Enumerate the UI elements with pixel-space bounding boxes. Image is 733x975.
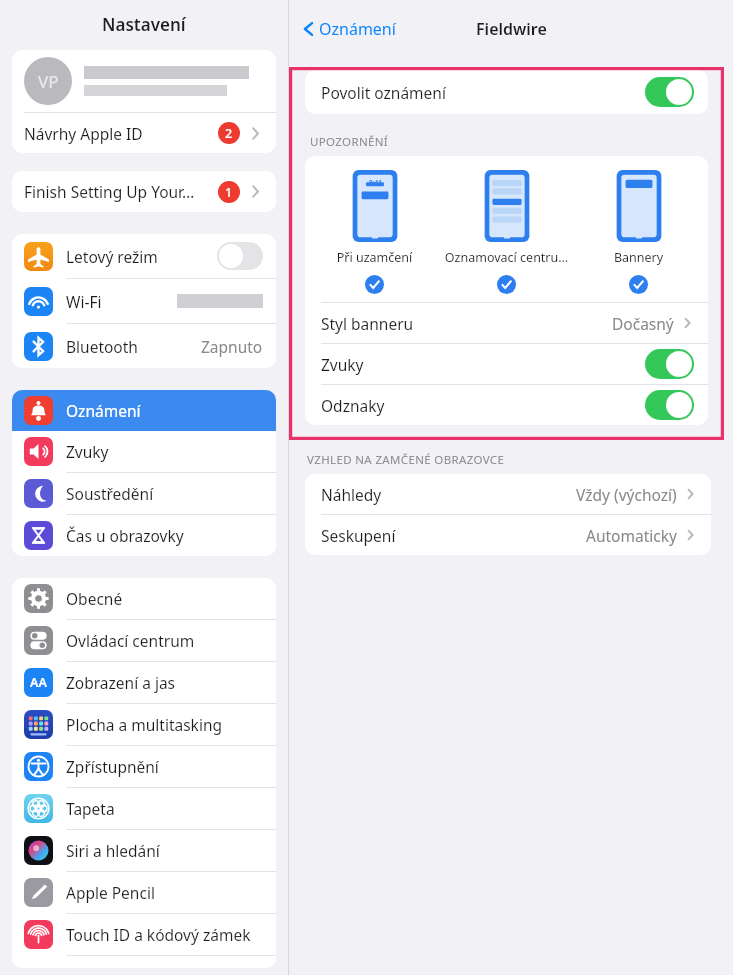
button[interactable]: Návrhy Apple ID xyxy=(12,113,276,153)
staticText: Oznámení xyxy=(319,18,396,40)
staticText: Oznámení xyxy=(66,400,263,421)
staticText: AA xyxy=(30,674,47,691)
button[interactable]: Obecné xyxy=(12,578,276,619)
staticText: Vždy (výchozí) xyxy=(576,484,677,505)
staticText: UPOZORNĚNÍ xyxy=(310,134,389,150)
button[interactable]: Finish Setting Up Your… xyxy=(12,171,276,212)
staticText: Obecné xyxy=(66,588,263,609)
button[interactable]: Čas u obrazovky xyxy=(12,515,276,556)
staticText: Styl banneru xyxy=(321,313,612,334)
button[interactable]: Apple Pencil xyxy=(12,872,276,913)
staticText: Oznamovací centrum xyxy=(444,249,569,266)
staticText: Plocha a multitasking xyxy=(66,714,263,735)
staticText: Tapeta xyxy=(66,798,263,819)
button[interactable]: Zapnuto xyxy=(645,77,694,107)
staticText: Návrhy Apple ID xyxy=(24,123,218,144)
staticText: Automaticky xyxy=(586,525,677,546)
staticText: Letový režim xyxy=(66,246,217,267)
staticText: Finish Setting Up Your… xyxy=(24,181,218,202)
button[interactable]: Oznámení xyxy=(299,15,400,43)
button[interactable]: 9:41 xyxy=(312,170,437,294)
staticText: Touch ID a kódový zámek xyxy=(66,924,263,945)
button[interactable]: Siri a hledání xyxy=(12,830,276,871)
staticText: Dočasný xyxy=(612,313,674,334)
staticText: Apple Pencil xyxy=(66,882,263,903)
button[interactable]: Styl banneru xyxy=(305,303,708,343)
staticText: Při uzamčení xyxy=(312,249,437,266)
button[interactable]: Ovládací centrum xyxy=(12,620,276,661)
button[interactable]: Vypnuto xyxy=(217,242,263,270)
staticText: VZHLED NA ZAMČENÉ OBRAZOVCE xyxy=(307,452,505,468)
button[interactable]: Wi‑Fi xyxy=(12,279,276,323)
staticText: Ovládací centrum xyxy=(66,630,263,651)
button[interactable]: Zapnuto xyxy=(645,390,694,420)
staticText: 9:41 xyxy=(369,178,382,187)
button[interactable]: Odznaky xyxy=(305,385,708,425)
button[interactable]: Bluetooth xyxy=(12,324,276,368)
staticText: Čas u obrazovky xyxy=(66,525,263,546)
staticText: Fieldwire xyxy=(476,18,547,40)
button[interactable]: Bannery xyxy=(576,170,701,294)
staticText: Siri a hledání xyxy=(66,840,263,861)
button[interactable]: Povolit oznámení xyxy=(305,70,708,114)
button[interactable]: Oznamovací centrum xyxy=(444,170,569,294)
button[interactable]: VP xyxy=(12,50,276,112)
button[interactable]: Náhledy xyxy=(305,474,711,514)
staticText: VP xyxy=(38,70,59,93)
button[interactable]: Zapnuto xyxy=(645,349,694,379)
button[interactable]: Plocha a multitasking xyxy=(12,704,276,745)
staticText: Bannery xyxy=(576,249,701,266)
staticText: Zpřístupnění xyxy=(66,756,263,777)
staticText: Seskupení xyxy=(321,525,586,546)
staticText: Zvuky xyxy=(321,354,645,375)
staticText: Bluetooth xyxy=(66,336,201,357)
staticText: Odznaky xyxy=(321,395,645,416)
button[interactable]: Zpřístupnění xyxy=(12,746,276,787)
button[interactable]: Oznámení xyxy=(12,390,276,431)
button[interactable]: Zvuky xyxy=(305,344,708,384)
staticText: 2 xyxy=(225,125,233,142)
staticText: Soustředění xyxy=(66,483,263,504)
staticText: Zvuky xyxy=(66,441,263,462)
staticText: Náhledy xyxy=(321,484,576,505)
staticText: 1 xyxy=(225,184,233,201)
button[interactable]: Touch ID a kódový zámek xyxy=(12,914,276,955)
button[interactable]: Seskupení xyxy=(305,515,711,555)
button[interactable]: Letový režim xyxy=(12,234,276,278)
button[interactable]: Tapeta xyxy=(12,788,276,829)
staticText: Nastavení xyxy=(102,13,186,36)
button[interactable]: Soustředění xyxy=(12,473,276,514)
staticText: Wi‑Fi xyxy=(66,291,177,312)
button[interactable]: Zvuky xyxy=(12,431,276,472)
staticText: Zapnuto xyxy=(201,336,263,357)
staticText: Povolit oznámení xyxy=(321,82,645,103)
button[interactable]: AA xyxy=(12,662,276,703)
staticText: Zobrazení a jas xyxy=(66,672,263,693)
